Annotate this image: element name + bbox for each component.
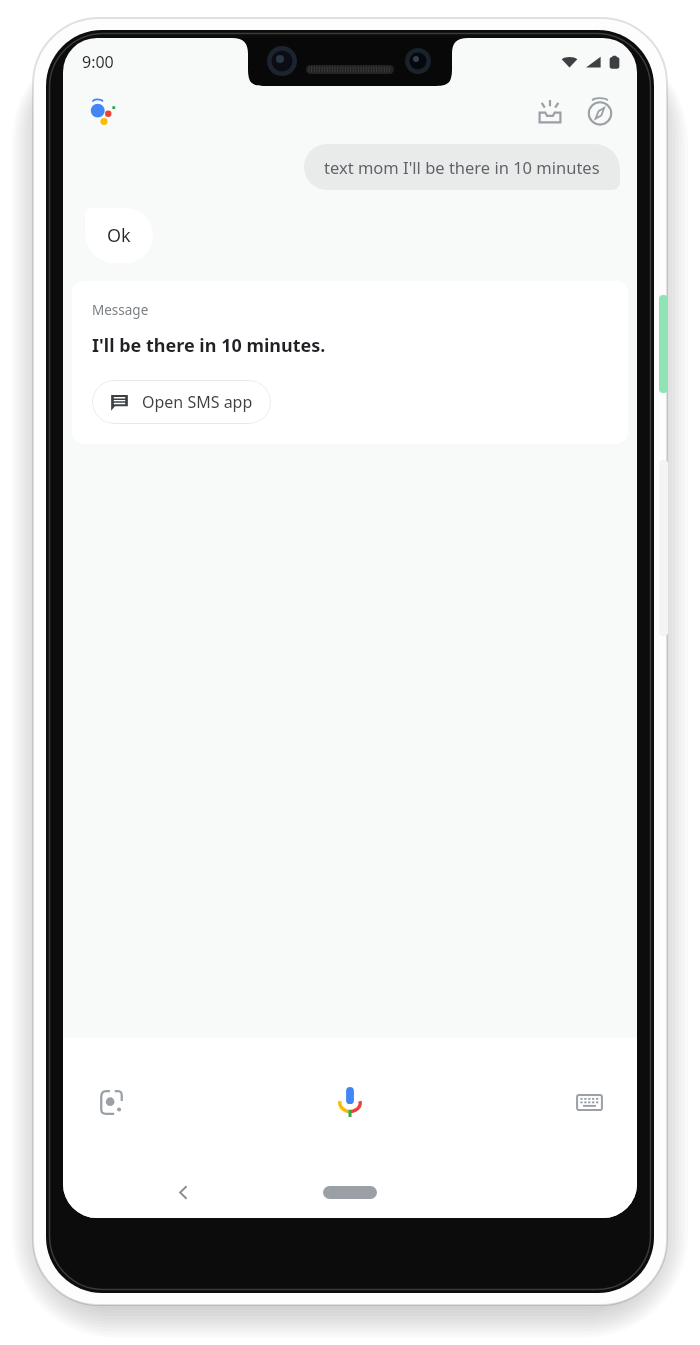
button[interactable]: text mom I'll be there in 10 minutes xyxy=(304,144,620,190)
button[interactable]: Snapshot xyxy=(527,89,573,135)
button[interactable]: Back xyxy=(163,1172,203,1212)
button[interactable]: Ok xyxy=(85,208,153,263)
button[interactable]: Explore xyxy=(577,89,623,135)
button[interactable]: Message xyxy=(72,281,628,444)
button[interactable]: Google Lens xyxy=(87,1078,135,1126)
staticText: Message xyxy=(92,301,149,319)
staticText: Open SMS app xyxy=(142,391,253,413)
button[interactable]: Home xyxy=(320,1178,380,1206)
button[interactable]: Open SMS app xyxy=(92,380,271,424)
button[interactable]: Google Assistant xyxy=(83,91,125,133)
button[interactable]: Voice input xyxy=(322,1074,378,1130)
staticText: 9:00 xyxy=(82,51,114,73)
staticText: text mom I'll be there in 10 minutes xyxy=(324,156,600,178)
staticText: I'll be there in 10 minutes. xyxy=(92,333,326,358)
staticText: Ok xyxy=(107,223,131,248)
button[interactable]: Keyboard xyxy=(565,1078,613,1126)
